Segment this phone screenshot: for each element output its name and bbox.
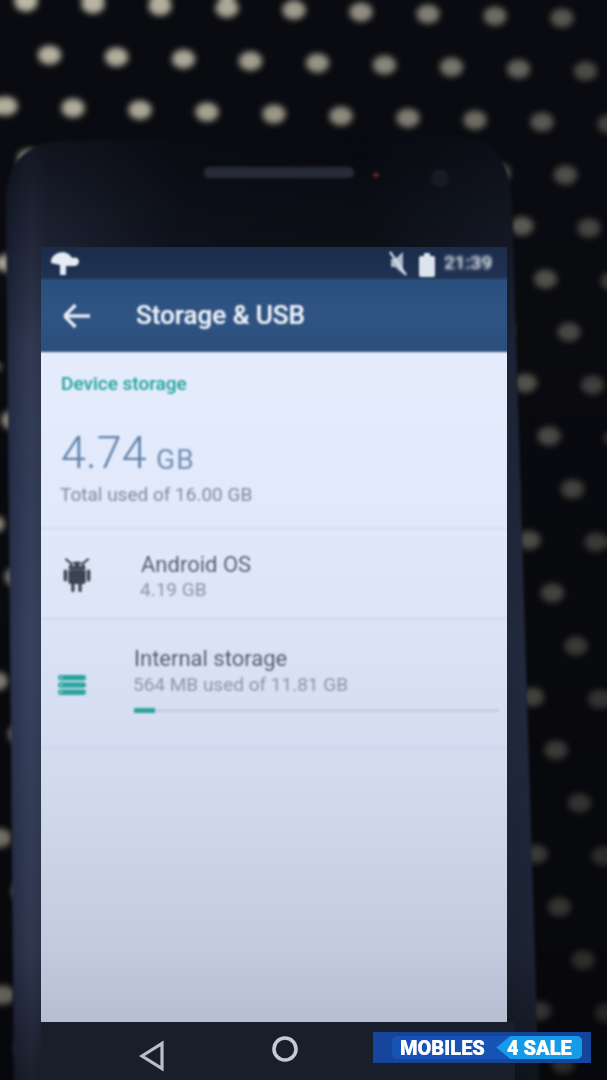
staticText: Total used of 16.00 GB (60, 483, 253, 505)
button[interactable]: Internal storage (41, 619, 507, 748)
staticText: Internal storage (134, 646, 288, 672)
button[interactable]: Navigate up (50, 289, 104, 343)
staticText: GB (156, 443, 195, 476)
staticText: 564 MB used of 11.81 GB (133, 673, 349, 695)
staticText: 4 SALE (507, 1036, 572, 1059)
staticText: 21:39 (444, 251, 493, 273)
button[interactable]: Home (266, 1030, 304, 1068)
staticText: Storage & USB (136, 300, 306, 330)
staticText: Device storage (61, 372, 187, 394)
button[interactable]: Android OS (41, 529, 507, 618)
button[interactable]: Back (133, 1037, 171, 1075)
staticText: 4.74 (61, 426, 147, 479)
staticText: 4.19 GB (140, 578, 207, 600)
staticText: MOBILES (400, 1036, 485, 1059)
staticText: Android OS (141, 552, 252, 578)
